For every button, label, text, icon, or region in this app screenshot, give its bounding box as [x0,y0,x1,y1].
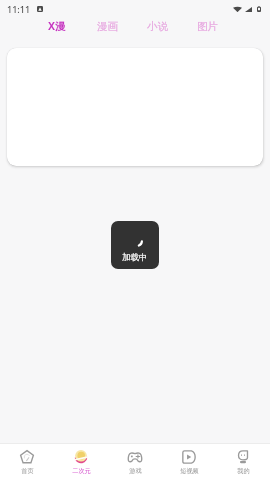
staticText: 小说 [147,20,168,33]
staticText: 11:11 [7,3,31,15]
button[interactable]: 小说 [132,15,182,37]
button[interactable]: X漫 [32,15,82,37]
button[interactable]: 漫画 [82,15,132,37]
staticText: X漫 [48,19,66,33]
staticText: 二次元 [72,467,91,475]
staticText: 短视频 [180,467,199,475]
button[interactable]: 首页 [0,444,54,480]
other: 加载中 [111,221,159,269]
button[interactable]: 我的 [216,444,270,480]
button[interactable]: 游戏 [108,444,162,480]
staticText: 图片 [197,20,218,33]
staticText: 加载中 [122,252,148,263]
staticText: 我的 [237,467,250,475]
button[interactable]: 二次元 [54,444,108,480]
staticText: 首页 [21,467,34,475]
button[interactable]: 短视频 [162,444,216,480]
button[interactable]: 图片 [182,15,232,37]
staticText: 漫画 [97,20,118,33]
staticText: 游戏 [129,467,142,475]
